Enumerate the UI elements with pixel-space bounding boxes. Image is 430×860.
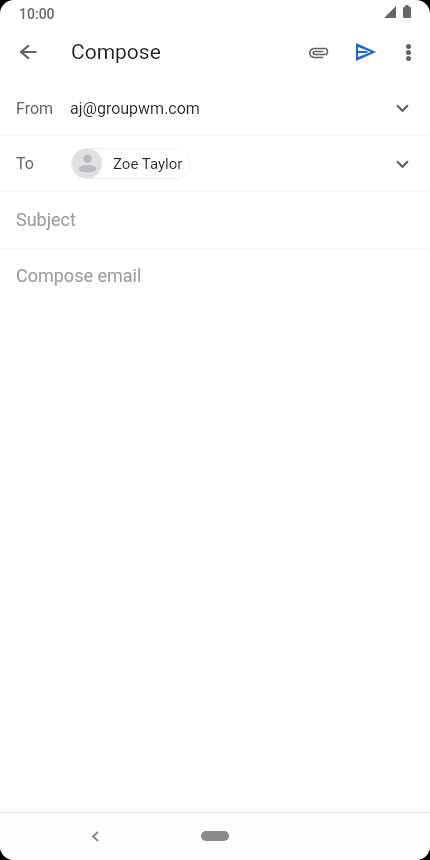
button[interactable]: Zoe Taylor [71,148,191,179]
button[interactable]: Compose email [0,249,430,305]
staticText: To [16,154,34,173]
button[interactable]: Home [201,831,229,841]
button[interactable]: Back [76,817,114,855]
button[interactable]: Navigate up [4,28,52,76]
staticText: aj@groupwm.com [70,99,200,118]
button[interactable]: Attach file [293,28,341,76]
staticText: Subject [16,209,76,230]
staticText: Zoe Taylor [113,155,183,173]
staticText: Compose [71,40,161,65]
button[interactable]: Send [342,28,390,76]
staticText: Compose email [16,265,142,286]
button[interactable]: From [0,81,430,136]
staticText: From [16,99,54,118]
button[interactable]: More options [384,28,430,76]
button[interactable]: Subject [0,192,430,248]
button[interactable]: To [0,136,430,191]
staticText: 10:00 [19,6,55,22]
